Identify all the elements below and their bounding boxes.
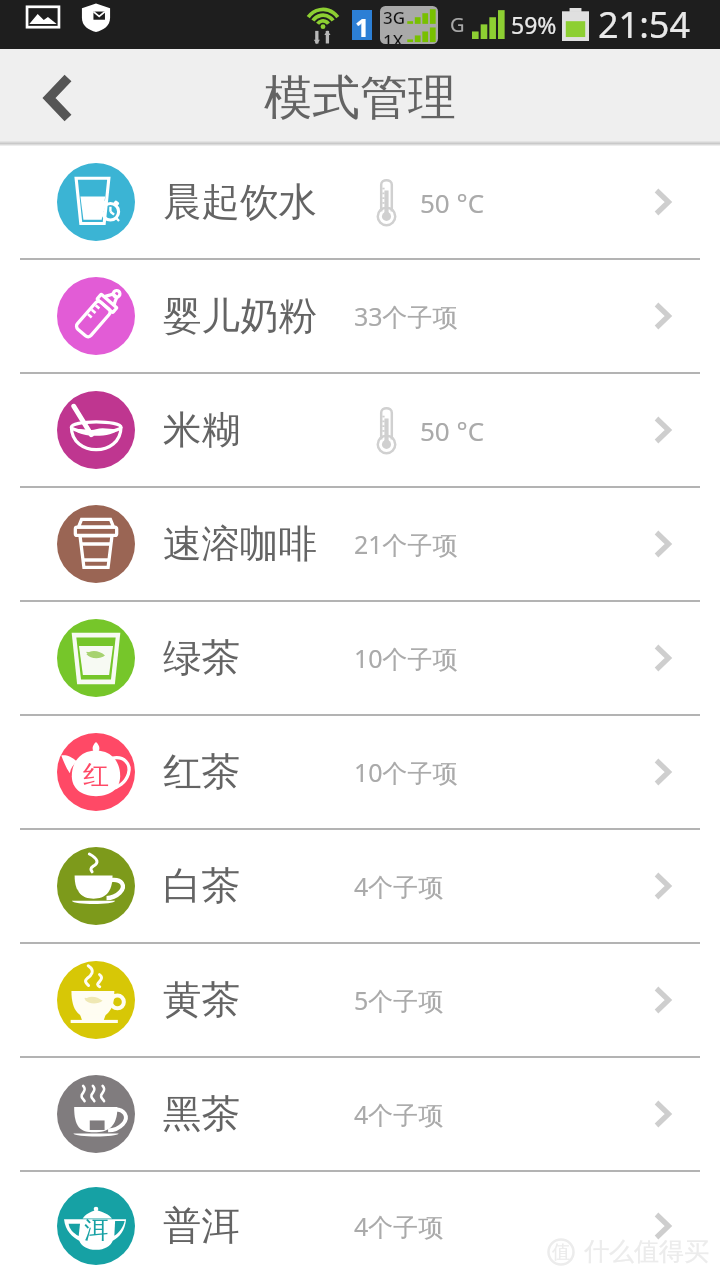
staticText: 什么值得买 (584, 1236, 709, 1267)
staticText: 晨起饮水 (163, 178, 317, 227)
button[interactable]: 黄茶 (0, 944, 720, 1056)
button[interactable]: 洱 (0, 1172, 720, 1280)
staticText: G (450, 11, 465, 38)
staticText: 模式管理 (264, 68, 456, 128)
staticText: 1X (383, 29, 404, 44)
staticText: 红茶 (163, 748, 240, 797)
staticText: 速溶咖啡 (163, 520, 317, 569)
staticText: 10个子项 (354, 755, 458, 789)
button[interactable]: 白茶 (0, 830, 720, 942)
staticText: 普洱 (163, 1202, 240, 1251)
button[interactable]: 米糊 (0, 374, 720, 486)
button[interactable]: 红 (0, 716, 720, 828)
staticText: 值 (552, 1241, 570, 1264)
button[interactable]: 绿茶 (0, 602, 720, 714)
button[interactable]: 黑茶 (0, 1058, 720, 1170)
staticText: 50 °C (420, 413, 485, 448)
staticText: 50 °C (420, 185, 485, 220)
staticText: 1 (355, 10, 370, 40)
staticText: 米糊 (163, 406, 240, 455)
staticText: 4个子项 (354, 1209, 444, 1243)
button[interactable]: 婴儿奶粉 (0, 260, 720, 372)
staticText: 白茶 (163, 862, 240, 911)
staticText: 21:54 (598, 0, 691, 49)
staticText: 21个子项 (354, 527, 458, 561)
staticText: 3G (383, 6, 406, 29)
staticText: 33个子项 (354, 299, 458, 333)
staticText: 婴儿奶粉 (163, 292, 317, 341)
staticText: 绿茶 (163, 634, 240, 683)
button[interactable]: 速溶咖啡 (0, 488, 720, 600)
staticText: 5个子项 (354, 983, 444, 1017)
staticText: 10个子项 (354, 641, 458, 675)
staticText: 59% (511, 9, 557, 40)
staticText: 4个子项 (354, 1097, 444, 1131)
staticText: 洱 (84, 1215, 108, 1245)
staticText: 黑茶 (163, 1090, 240, 1139)
button[interactable]: Back (0, 49, 116, 146)
staticText: 4个子项 (354, 869, 444, 903)
button[interactable]: 晨起饮水 (0, 146, 720, 258)
staticText: 红 (83, 759, 109, 792)
staticText: 黄茶 (163, 976, 240, 1025)
